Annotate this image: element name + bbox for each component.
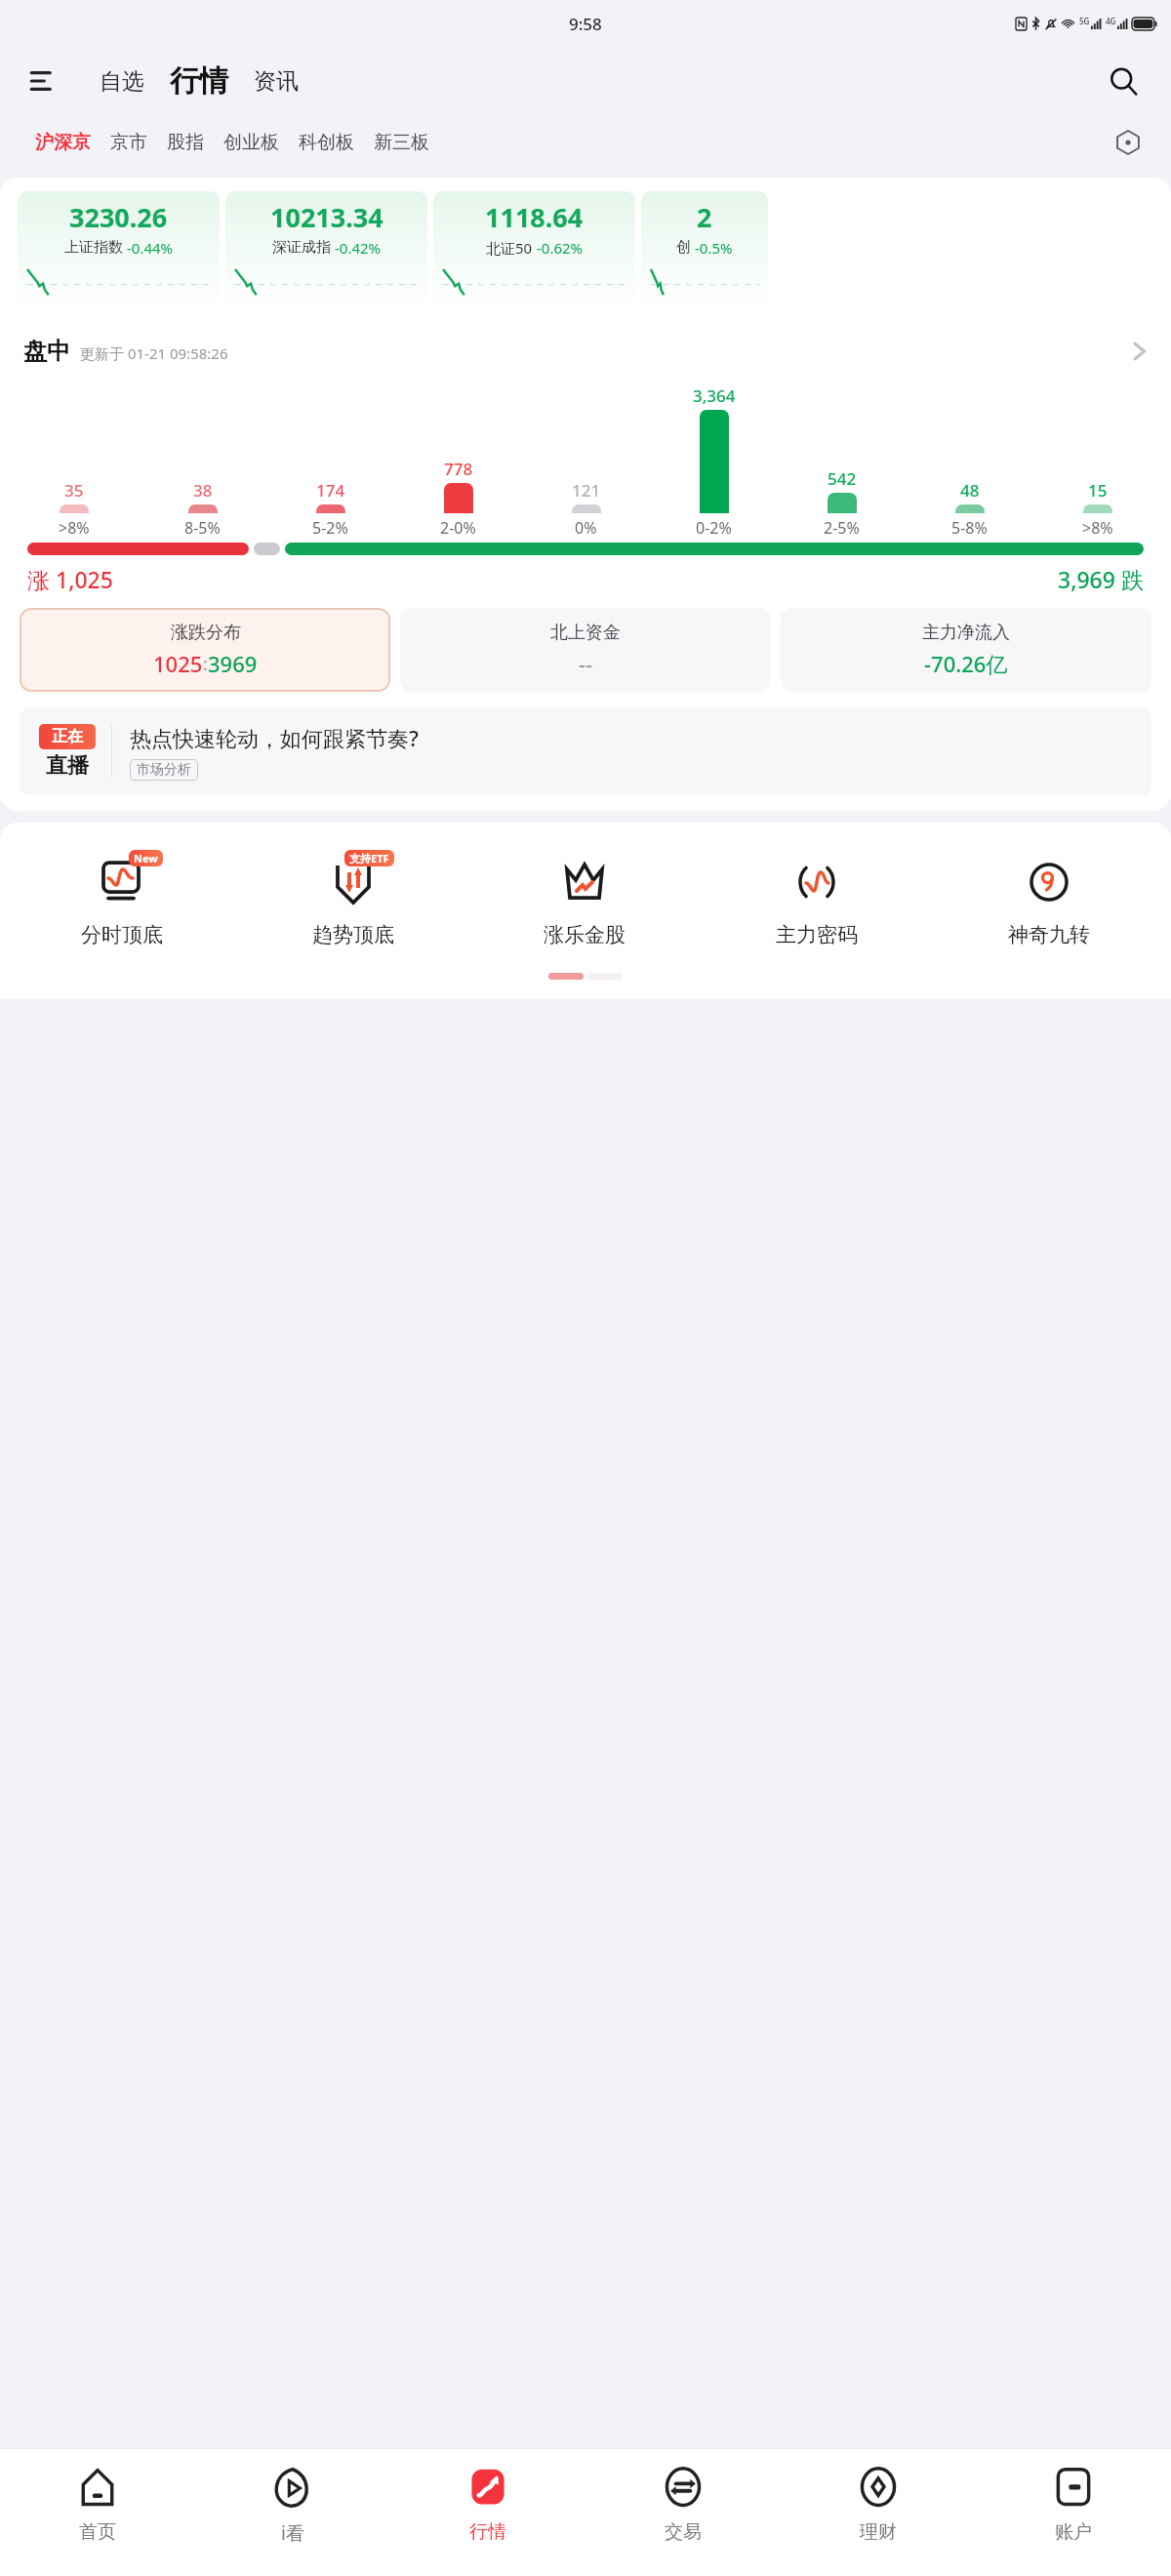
staticText: 5G xyxy=(1079,16,1090,26)
staticText: 4G xyxy=(1106,16,1116,26)
staticText: 深证成指 xyxy=(272,238,331,257)
staticText: 5-2% xyxy=(312,517,348,537)
button[interactable]: 主力密码 xyxy=(701,848,933,951)
staticText: i看 xyxy=(281,2520,304,2546)
button[interactable]: Search xyxy=(1101,59,1146,103)
staticText: >8% xyxy=(59,517,90,537)
button[interactable]: 账户 xyxy=(976,2449,1171,2576)
staticText: 0-2% xyxy=(696,517,732,537)
button[interactable]: 支持ETF xyxy=(237,848,468,951)
button[interactable]: i看 xyxy=(195,2449,390,2576)
staticText: 778 xyxy=(444,458,473,480)
button[interactable]: 沪深京 xyxy=(25,125,101,160)
staticText: 3230.26 xyxy=(69,199,168,235)
staticText: 交易 xyxy=(665,2520,702,2544)
button[interactable]: 10213.34 xyxy=(225,191,427,310)
staticText: 股指 xyxy=(167,131,204,154)
staticText: -0.42% xyxy=(335,238,382,258)
button[interactable]: 理财 xyxy=(781,2449,976,2576)
staticText: 账户 xyxy=(1055,2520,1092,2544)
staticText: 3,969 跌 xyxy=(1058,564,1144,594)
button[interactable]: 自选 xyxy=(94,61,150,101)
button[interactable]: 1118.64 xyxy=(433,191,635,310)
button[interactable]: 首页 xyxy=(0,2449,195,2576)
staticText: New xyxy=(134,851,158,865)
staticText: 542 xyxy=(828,467,857,490)
staticText: 48 xyxy=(960,479,980,502)
staticText: 38 xyxy=(193,479,213,502)
staticText: 市场分析 xyxy=(137,761,191,779)
staticText: 科创板 xyxy=(299,131,354,154)
staticText: 涨跌分布 xyxy=(171,622,241,644)
staticText: 直播 xyxy=(46,752,89,780)
staticText: 2-5% xyxy=(824,517,860,537)
staticText: 上证指数 xyxy=(64,238,123,257)
staticText: 35 xyxy=(64,479,84,502)
staticText: 北上资金 xyxy=(550,622,621,644)
staticText: 1118.64 xyxy=(485,199,584,235)
staticText: 0% xyxy=(575,517,597,537)
staticText: 8-5% xyxy=(184,517,221,537)
staticText: -0.5% xyxy=(695,238,733,258)
button[interactable]: 交易 xyxy=(585,2449,781,2576)
staticText: 主力净流入 xyxy=(922,622,1010,644)
staticText: 行情 xyxy=(170,62,228,100)
button[interactable]: 主力净流入 xyxy=(781,608,1151,692)
staticText: 分时顶底 xyxy=(81,922,163,947)
staticText: 创业板 xyxy=(223,131,279,154)
staticText: 北证50 xyxy=(486,238,533,258)
staticText: 3,364 xyxy=(693,384,736,407)
staticText: 15 xyxy=(1088,479,1108,502)
staticText: 首页 xyxy=(79,2520,116,2544)
staticText: 资讯 xyxy=(254,67,299,96)
button[interactable]: 正在 xyxy=(20,707,1151,795)
staticText: 174 xyxy=(316,479,345,502)
staticText: 热点快速轮动，如何跟紧节奏? xyxy=(130,723,419,752)
button[interactable]: 涨乐金股 xyxy=(468,848,701,951)
staticText: 3969 xyxy=(208,649,258,678)
staticText: 10213.34 xyxy=(270,199,384,235)
button[interactable]: 资讯 xyxy=(248,61,304,101)
button[interactable]: 神奇九转 xyxy=(933,848,1165,951)
staticText: 自选 xyxy=(100,67,144,96)
staticText: 121 xyxy=(572,479,601,502)
button[interactable]: 股指 xyxy=(157,125,214,160)
button[interactable]: Edit tabs xyxy=(1107,121,1150,164)
staticText: -- xyxy=(579,649,593,678)
staticText: >8% xyxy=(1082,517,1113,537)
staticText: 涨 1,025 xyxy=(27,564,113,594)
staticText: 创 xyxy=(676,238,691,257)
staticText: 1025 xyxy=(153,649,203,678)
button[interactable]: Menu xyxy=(21,60,64,102)
button[interactable]: 创业板 xyxy=(214,125,289,160)
button[interactable]: 涨跌分布 xyxy=(20,608,390,692)
staticText: 行情 xyxy=(469,2520,506,2544)
button[interactable]: 3230.26 xyxy=(18,191,220,310)
button[interactable]: 科创板 xyxy=(289,125,364,160)
button[interactable]: New xyxy=(6,848,237,951)
staticText: 主力密码 xyxy=(776,922,858,947)
staticText: 趋势顶底 xyxy=(312,922,394,947)
staticText: 涨乐金股 xyxy=(544,922,626,947)
staticText: 盘中 xyxy=(23,337,70,366)
staticText: 理财 xyxy=(860,2520,897,2544)
staticText: 京市 xyxy=(110,131,147,154)
button[interactable]: 京市 xyxy=(101,125,157,160)
staticText: 9:58 xyxy=(569,13,602,35)
button[interactable]: 2 xyxy=(641,191,768,310)
staticText: -70.26亿 xyxy=(924,649,1008,678)
button[interactable]: 盘中 xyxy=(0,328,1171,375)
button[interactable]: 行情 xyxy=(390,2449,585,2576)
staticText: 支持ETF xyxy=(349,851,389,865)
staticText: 新三板 xyxy=(374,131,429,154)
staticText: 正在 xyxy=(52,727,83,746)
staticText: 更新于 01-21 09:58:26 xyxy=(80,343,228,363)
button[interactable]: 新三板 xyxy=(364,125,439,160)
staticText: -0.62% xyxy=(537,238,584,258)
staticText: 2-0% xyxy=(440,517,476,537)
staticText: 2 xyxy=(697,199,712,235)
staticText: 5-8% xyxy=(951,517,988,537)
button[interactable]: 北上资金 xyxy=(400,608,771,692)
staticText: : xyxy=(203,652,208,676)
button[interactable]: 行情 xyxy=(164,60,234,101)
